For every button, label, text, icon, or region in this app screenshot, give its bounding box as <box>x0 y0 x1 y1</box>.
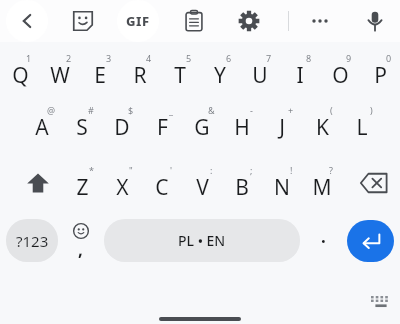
button[interactable]: ( <box>302 98 342 148</box>
staticText: D <box>114 113 130 142</box>
staticText: GIF <box>126 12 150 30</box>
button[interactable]: ; <box>222 158 262 208</box>
staticText: # <box>88 104 94 116</box>
button[interactable]: ) <box>342 98 382 148</box>
staticText: 0 <box>386 52 392 64</box>
staticText: L <box>356 113 368 142</box>
staticText: * <box>89 164 94 176</box>
staticText: E <box>94 61 106 90</box>
button[interactable]: # <box>62 98 102 148</box>
staticText: R <box>133 61 147 90</box>
staticText: 5 <box>186 52 192 64</box>
button[interactable]: PL • EN <box>104 219 300 262</box>
button[interactable]: _ <box>142 98 182 148</box>
button[interactable]: 3 <box>80 46 120 96</box>
staticText: F <box>157 113 168 142</box>
button[interactable]: More options <box>298 0 342 42</box>
button[interactable]: 6 <box>200 46 240 96</box>
staticText: _ <box>169 104 173 116</box>
staticText: J <box>279 113 285 142</box>
button[interactable]: Backspace <box>348 158 400 208</box>
staticText: PL • EN <box>178 231 226 250</box>
staticText: S <box>76 113 88 142</box>
button[interactable]: ! <box>262 158 302 208</box>
button[interactable]: . <box>302 219 344 262</box>
staticText: 7 <box>266 52 272 64</box>
button[interactable]: + <box>262 98 302 148</box>
button[interactable]: : <box>182 158 222 208</box>
staticText: C <box>155 173 169 202</box>
staticText: Z <box>76 173 89 202</box>
button[interactable]: Emoji and comma <box>60 219 102 262</box>
staticText: 6 <box>226 52 232 64</box>
staticText: G <box>194 113 210 142</box>
button[interactable]: 4 <box>120 46 160 96</box>
button[interactable]: Shift <box>10 158 66 208</box>
button[interactable]: Stickers <box>61 0 105 42</box>
staticText: $ <box>128 104 134 116</box>
button[interactable]: " <box>102 158 142 208</box>
staticText: M <box>312 173 332 202</box>
staticText: ) <box>370 104 373 116</box>
staticText: & <box>208 104 215 116</box>
staticText: K <box>316 113 329 142</box>
staticText: U <box>252 61 268 90</box>
staticText: - <box>250 104 253 116</box>
staticText: I <box>296 61 304 90</box>
staticText: A <box>35 113 49 142</box>
staticText: ' <box>170 164 173 176</box>
button[interactable]: 2 <box>40 46 80 96</box>
staticText: H <box>234 113 250 142</box>
staticText: 9 <box>346 52 352 64</box>
button[interactable]: 1 <box>0 46 40 96</box>
button[interactable]: 5 <box>160 46 200 96</box>
button[interactable]: 8 <box>280 46 320 96</box>
staticText: 2 <box>66 52 72 64</box>
staticText: P <box>374 61 387 90</box>
button[interactable]: $ <box>102 98 142 148</box>
staticText: N <box>274 173 290 202</box>
button[interactable]: & <box>182 98 222 148</box>
staticText: . <box>321 225 326 248</box>
staticText: + <box>288 104 294 116</box>
button[interactable]: 9 <box>320 46 360 96</box>
staticText: 4 <box>146 52 152 64</box>
staticText: : <box>210 164 213 176</box>
staticText: ?123 <box>16 231 49 251</box>
button[interactable]: @ <box>22 98 62 148</box>
staticText: 1 <box>26 52 32 64</box>
button[interactable]: ?123 <box>6 219 58 262</box>
staticText: @ <box>47 104 56 116</box>
staticText: 3 <box>106 52 112 64</box>
button[interactable]: 7 <box>240 46 280 96</box>
staticText: Y <box>214 61 226 90</box>
staticText: , <box>78 238 83 261</box>
staticText: ? <box>329 164 333 176</box>
staticText: X <box>116 173 129 202</box>
button[interactable]: 0 <box>360 46 400 96</box>
staticText: B <box>235 173 249 202</box>
button[interactable]: Back <box>5 0 49 42</box>
button[interactable]: Switch keyboard <box>364 288 398 316</box>
staticText: ! <box>290 164 293 176</box>
button[interactable]: ' <box>142 158 182 208</box>
button[interactable]: Settings <box>227 0 271 42</box>
staticText: " <box>129 164 133 176</box>
staticText: ( <box>330 104 333 116</box>
button[interactable]: Clipboard <box>172 0 216 42</box>
staticText: T <box>174 61 186 90</box>
staticText: W <box>50 61 70 90</box>
staticText: O <box>332 61 349 90</box>
button[interactable]: Voice input <box>353 0 397 42</box>
button[interactable]: GIF <box>116 0 160 42</box>
button[interactable]: - <box>222 98 262 148</box>
staticText: ; <box>250 164 253 176</box>
staticText: Q <box>12 61 29 90</box>
button[interactable]: Enter <box>347 220 394 262</box>
button[interactable]: * <box>62 158 102 208</box>
staticText: V <box>196 173 209 202</box>
staticText: 8 <box>306 52 312 64</box>
button[interactable]: ? <box>302 158 342 208</box>
